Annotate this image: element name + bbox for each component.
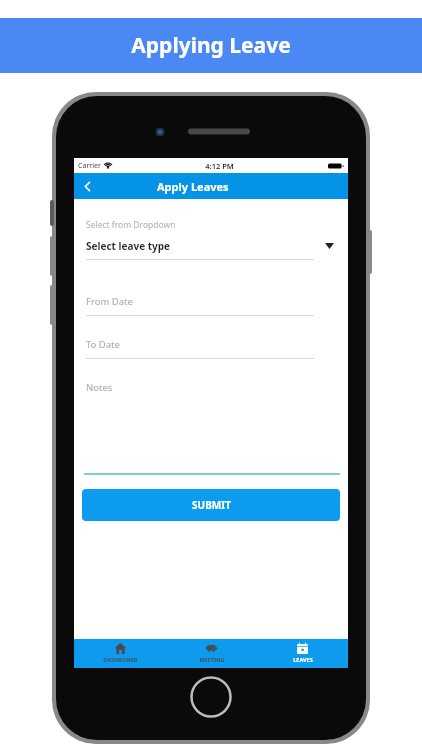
button[interactable]: Back xyxy=(74,173,100,199)
staticText: Select from Dropdown xyxy=(86,219,176,231)
button[interactable]: MEETING xyxy=(166,639,257,668)
button[interactable]: SUBMIT xyxy=(82,489,340,521)
button[interactable]: Select leave type xyxy=(74,235,348,261)
staticText: To Date xyxy=(86,338,120,351)
staticText: Notes xyxy=(86,381,113,394)
staticText: Apply Leaves xyxy=(157,179,229,194)
staticText: 4:12 PM xyxy=(205,161,234,171)
button[interactable]: LEAVES xyxy=(257,639,348,668)
staticText: SUBMIT xyxy=(192,498,231,512)
staticText: MEETING xyxy=(199,656,225,663)
staticText: Carrier xyxy=(78,161,101,171)
staticText: From Date xyxy=(86,295,133,308)
staticText: LEAVES xyxy=(293,656,313,663)
button[interactable]: DASHBOARD xyxy=(74,639,166,668)
staticText: Select leave type xyxy=(86,239,171,253)
staticText: Applying Leave xyxy=(131,31,291,60)
staticText: DASHBOARD xyxy=(103,656,138,663)
